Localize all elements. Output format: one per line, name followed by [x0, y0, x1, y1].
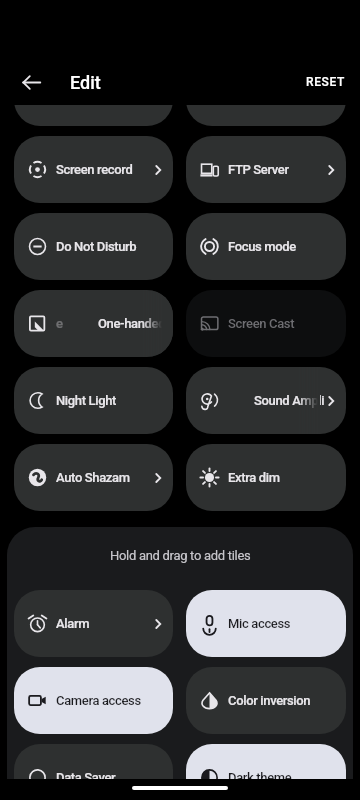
- staticText: Hold and drag to add tiles: [110, 548, 251, 563]
- button[interactable]: Mic access: [186, 590, 346, 657]
- staticText: Dark theme: [228, 770, 340, 779]
- button[interactable]: FTP Server: [186, 136, 346, 203]
- button[interactable]: Do Not Disturb: [14, 213, 173, 280]
- staticText: Night Light: [56, 393, 167, 408]
- button[interactable]: Screen record: [14, 136, 173, 203]
- button[interactable]: Data Saver: [14, 744, 173, 779]
- staticText: Edit: [70, 72, 101, 93]
- button[interactable]: Alarm: [14, 590, 173, 657]
- button[interactable]: Dark theme: [186, 744, 346, 779]
- button[interactable]: Focus mode: [186, 213, 346, 280]
- staticText: Mic access: [228, 616, 340, 631]
- staticText: Extra dim: [228, 470, 340, 485]
- button[interactable]: e: [14, 290, 173, 357]
- staticText: Focus mode: [228, 239, 340, 254]
- staticText: Alarm: [56, 616, 151, 631]
- staticText: e: [56, 316, 63, 331]
- staticText: Color inversion: [228, 693, 340, 708]
- button[interactable]: Auto Shazam: [14, 444, 173, 511]
- button[interactable]: RESET: [302, 69, 349, 95]
- button[interactable]: Sound Amplifier: [186, 367, 346, 434]
- button[interactable]: Extra dim: [186, 444, 346, 511]
- button[interactable]: Color inversion: [186, 667, 346, 734]
- staticText: Do Not Disturb: [56, 239, 167, 254]
- staticText: One-handed mode: [98, 316, 167, 331]
- staticText: Data Saver: [56, 770, 167, 779]
- staticText: Camera access: [56, 693, 167, 708]
- staticText: FTP Server: [228, 162, 324, 177]
- staticText: Screen record: [56, 162, 151, 177]
- button[interactable]: Back: [0, 57, 62, 107]
- button[interactable]: Screen Cast: [186, 290, 346, 357]
- staticText: Auto Shazam: [56, 470, 151, 485]
- staticText: Sound Amplifier: [254, 393, 324, 408]
- button[interactable]: Camera access: [14, 667, 173, 734]
- staticText: RESET: [306, 75, 345, 89]
- button[interactable]: Night Light: [14, 367, 173, 434]
- staticText: Screen Cast: [228, 316, 340, 331]
